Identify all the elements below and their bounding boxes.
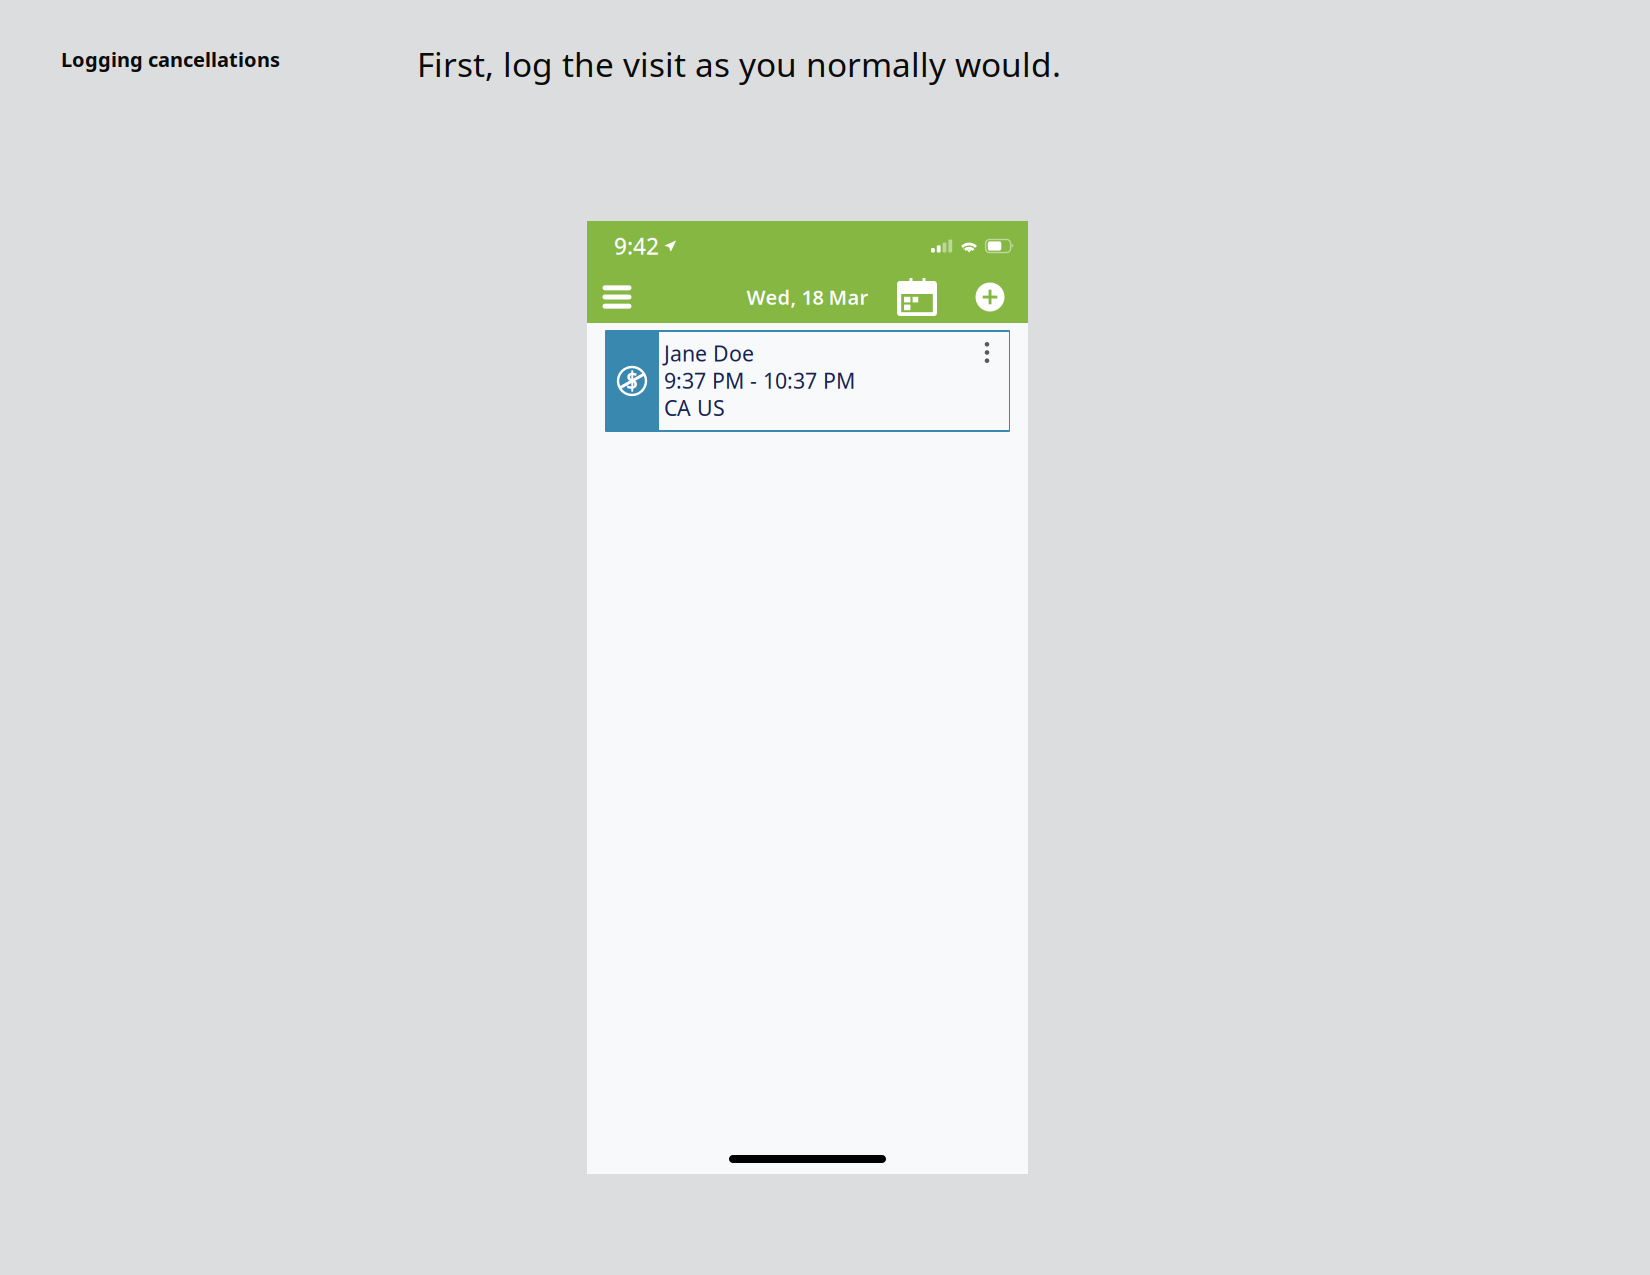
staticText: Logging cancellations <box>61 46 280 73</box>
staticText: First, log the visit as you normally wou… <box>417 42 1061 86</box>
staticText: S <box>626 366 638 395</box>
staticText: Jane Doe <box>664 339 754 367</box>
button[interactable]: Add visit <box>968 271 1012 323</box>
staticText: 9:42 <box>614 231 659 261</box>
staticText: Wed, 18 Mar <box>746 284 868 310</box>
staticText: CA US <box>664 394 725 422</box>
button[interactable]: S <box>605 331 1010 431</box>
button[interactable]: Calendar <box>893 271 941 323</box>
button[interactable]: Menu <box>595 271 639 323</box>
staticText: 9:37 PM - 10:37 PM <box>664 366 855 395</box>
